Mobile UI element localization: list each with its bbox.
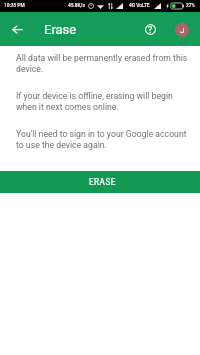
staticText: 10:35 PM: [4, 3, 25, 9]
staticText: J: [180, 26, 185, 35]
staticText: 27%: [186, 3, 195, 9]
staticText: ?: [148, 25, 153, 35]
staticText: ERASE: [89, 177, 116, 187]
button[interactable]: Account: [175, 23, 189, 37]
staticText: You'll need to sign in to your Google ac…: [16, 129, 192, 150]
button[interactable]: ERASE: [0, 171, 200, 193]
staticText: Erase: [44, 22, 77, 37]
staticText: If your device is offline, erasing will …: [16, 91, 192, 112]
button[interactable]: Back: [7, 19, 28, 40]
staticText: 4G VoLTE: [129, 3, 150, 9]
button[interactable]: Help: [140, 19, 161, 40]
staticText: All data will be permanently erased from…: [16, 53, 192, 74]
staticText: 45.8K/s: [68, 3, 85, 9]
